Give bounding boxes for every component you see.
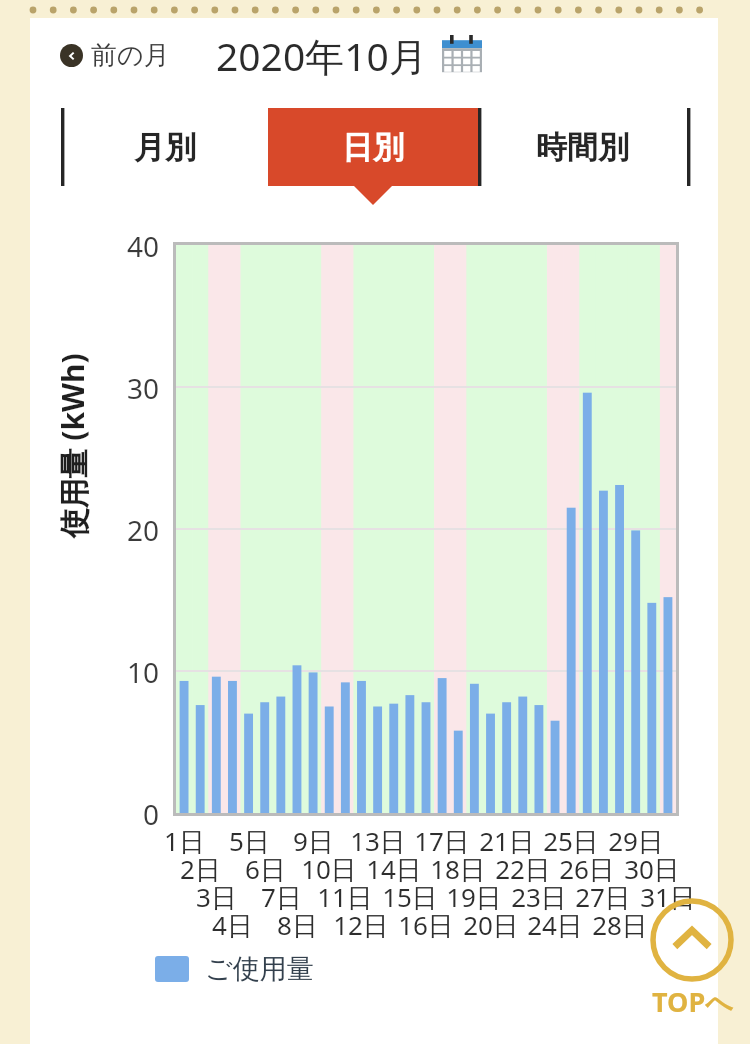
staticText: 30 xyxy=(127,369,160,407)
staticText: 22日 xyxy=(495,851,551,887)
staticText: 使用量 (kWh) xyxy=(51,352,92,538)
staticText: 17日 xyxy=(414,823,470,859)
staticText: 40 xyxy=(127,227,160,265)
staticText: 0 xyxy=(143,795,160,833)
staticText: 10日 xyxy=(301,851,357,887)
staticText: 30日 xyxy=(624,851,680,887)
staticText: 5日 xyxy=(229,823,270,859)
staticText: 31日 xyxy=(640,879,696,915)
staticText: 1日 xyxy=(164,823,205,859)
staticText: 10 xyxy=(127,653,160,691)
staticText: 4日 xyxy=(212,907,253,943)
button[interactable]: 前の月 xyxy=(58,35,172,76)
staticText: 18日 xyxy=(430,851,486,887)
staticText: 日別 xyxy=(342,128,404,167)
button[interactable]: 時間別 xyxy=(478,108,687,186)
staticText: 26日 xyxy=(559,851,615,887)
staticText: 7日 xyxy=(261,879,302,915)
staticText: 27日 xyxy=(575,879,631,915)
staticText: 21日 xyxy=(479,823,535,859)
staticText: 20日 xyxy=(463,907,519,943)
staticText: 9日 xyxy=(293,823,334,859)
staticText: 2020年10月 xyxy=(216,29,428,82)
staticText: 19日 xyxy=(446,879,502,915)
staticText: 11日 xyxy=(317,879,373,915)
button[interactable]: カレンダーを開く xyxy=(442,35,482,75)
staticText: 2日 xyxy=(180,851,221,887)
staticText: 8日 xyxy=(277,907,318,943)
staticText: 12日 xyxy=(333,907,389,943)
staticText: 3日 xyxy=(196,879,237,915)
button[interactable]: 月別 xyxy=(61,108,268,186)
button[interactable]: TOPへ戻る xyxy=(644,898,740,1020)
staticText: 月別 xyxy=(134,128,196,167)
button[interactable]: ご使用量 xyxy=(137,941,632,997)
staticText: 28日 xyxy=(592,907,648,943)
staticText: 6日 xyxy=(245,851,286,887)
staticText: 16日 xyxy=(398,907,454,943)
staticText: 25日 xyxy=(543,823,599,859)
staticText: 15日 xyxy=(382,879,438,915)
staticText: 23日 xyxy=(511,879,567,915)
staticText: 29日 xyxy=(608,823,664,859)
staticText: 13日 xyxy=(350,823,406,859)
staticText: ご使用量 xyxy=(205,952,314,986)
staticText: 14日 xyxy=(366,851,422,887)
staticText: 24日 xyxy=(527,907,583,943)
staticText: TOPへ xyxy=(652,983,733,1020)
staticText: 時間別 xyxy=(536,128,629,167)
button[interactable]: 日別 xyxy=(268,108,478,186)
staticText: 前の月 xyxy=(91,39,170,72)
staticText: 20 xyxy=(127,511,160,549)
